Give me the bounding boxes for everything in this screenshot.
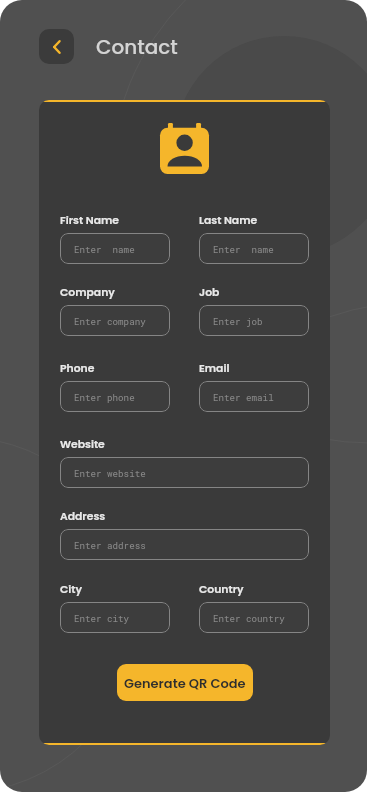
staticText: Enter job xyxy=(213,315,263,327)
button[interactable]: Enter phone xyxy=(60,381,170,412)
staticText: Contact xyxy=(96,33,178,61)
staticText: Address xyxy=(60,509,106,524)
button[interactable]: Enter job xyxy=(199,305,309,336)
staticText: Enter email xyxy=(213,391,274,403)
staticText: Generate QR Code xyxy=(124,674,246,692)
staticText: Enter company xyxy=(74,315,146,327)
staticText: Country xyxy=(199,582,244,597)
staticText: Enter website xyxy=(74,467,146,479)
button[interactable]: Enter address xyxy=(60,529,309,560)
staticText: Phone xyxy=(60,361,95,376)
staticText: Website xyxy=(60,437,105,452)
button[interactable]: Back xyxy=(39,29,74,64)
staticText: Enter phone xyxy=(74,391,135,403)
staticText: Enter address xyxy=(74,539,146,551)
staticText: Enter name xyxy=(74,243,135,255)
button[interactable]: Enter city xyxy=(60,602,170,633)
staticText: Enter name xyxy=(213,243,274,255)
button[interactable]: Enter company xyxy=(60,305,170,336)
staticText: Enter city xyxy=(74,612,130,624)
button[interactable]: Enter name xyxy=(199,233,309,264)
staticText: City xyxy=(60,582,83,597)
staticText: Last Name xyxy=(199,213,258,228)
staticText: Enter country xyxy=(213,612,285,624)
staticText: Company xyxy=(60,285,115,300)
staticText: Job xyxy=(199,285,220,300)
button[interactable]: Enter email xyxy=(199,381,309,412)
button[interactable]: Enter country xyxy=(199,602,309,633)
staticText: Email xyxy=(199,361,230,376)
button[interactable]: Enter website xyxy=(60,457,309,488)
button[interactable]: Generate QR Code xyxy=(117,664,253,701)
staticText: First Name xyxy=(60,213,119,228)
button[interactable]: Enter name xyxy=(60,233,170,264)
